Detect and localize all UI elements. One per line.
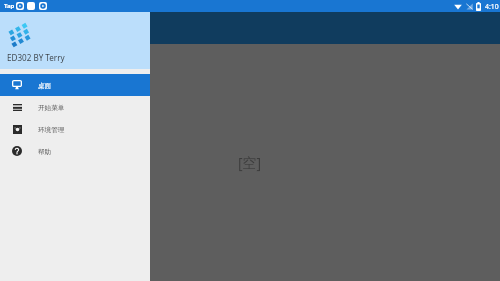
button[interactable]: ED302 logo [0, 12, 150, 69]
button[interactable]: 桌面 [0, 74, 150, 96]
staticText: 帮助 [38, 148, 52, 156]
button[interactable]: 帮助 [0, 140, 150, 162]
staticText: [空] [238, 153, 262, 172]
other: ED302 logo [9, 22, 31, 46]
staticText: 开始菜单 [38, 104, 65, 112]
staticText: Tap [4, 2, 15, 10]
staticText: ED302 BY Terry [7, 52, 65, 63]
staticText: 桌面 [38, 82, 52, 90]
button[interactable]: 开始菜单 [0, 96, 150, 118]
staticText: 4:10 [485, 2, 499, 11]
button[interactable]: 环境管理 [0, 118, 150, 140]
staticText: 环境管理 [38, 126, 65, 134]
